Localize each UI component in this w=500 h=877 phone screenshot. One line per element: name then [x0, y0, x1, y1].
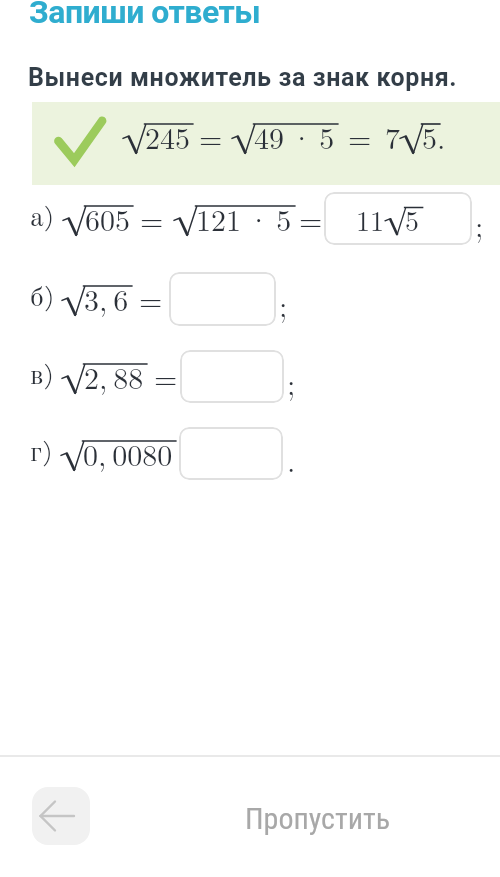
staticText: =	[299, 197, 323, 240]
staticText: Вынеси множитель за знак корня.	[28, 63, 458, 92]
staticText: ;	[279, 283, 288, 326]
staticText: ;	[287, 361, 296, 404]
button[interactable]: Пропустить	[245, 801, 391, 836]
staticText: =	[348, 115, 372, 158]
staticText: в)	[30, 363, 54, 391]
staticText: =	[139, 277, 163, 320]
staticText: г)	[30, 440, 53, 468]
staticText: 245	[145, 115, 190, 158]
staticText: 7	[385, 115, 400, 158]
staticText: а)	[30, 205, 55, 233]
staticText: 0, 0080	[83, 432, 173, 475]
staticText: 121 · 5	[196, 197, 292, 240]
button[interactable]	[180, 350, 284, 403]
staticText: 11	[356, 199, 385, 239]
button[interactable]	[169, 272, 276, 326]
staticText: .	[437, 115, 446, 158]
staticText: =	[140, 197, 164, 240]
staticText: 2, 88	[84, 355, 144, 398]
staticText: ;	[475, 203, 484, 246]
staticText: 5	[422, 115, 437, 158]
staticText: 605	[85, 197, 130, 240]
button[interactable]	[32, 787, 90, 845]
staticText: 3, 6	[84, 277, 129, 320]
staticText: 49 · 5	[254, 115, 335, 158]
staticText: 5	[405, 199, 420, 239]
staticText: б)	[30, 285, 55, 313]
staticText: .	[287, 438, 296, 481]
staticText: =	[199, 115, 223, 158]
staticText: Запиши ответы	[29, 0, 261, 31]
button[interactable]: 11	[324, 192, 472, 245]
staticText: =	[154, 355, 178, 398]
button[interactable]	[179, 427, 283, 480]
